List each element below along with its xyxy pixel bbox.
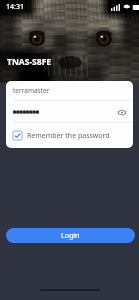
staticText: Login xyxy=(61,231,80,241)
button[interactable]: Show password xyxy=(6,101,133,122)
button[interactable]: Show password xyxy=(117,107,127,117)
button[interactable]: terramaster xyxy=(6,81,133,100)
staticText: TNAS-S8FE xyxy=(7,56,52,68)
button[interactable]: Login xyxy=(6,228,135,243)
staticText: Remember the password xyxy=(27,131,110,141)
staticText: terramaster xyxy=(13,86,50,95)
staticText: 14:31 xyxy=(6,2,24,12)
button[interactable]: Remember the password xyxy=(6,123,133,148)
